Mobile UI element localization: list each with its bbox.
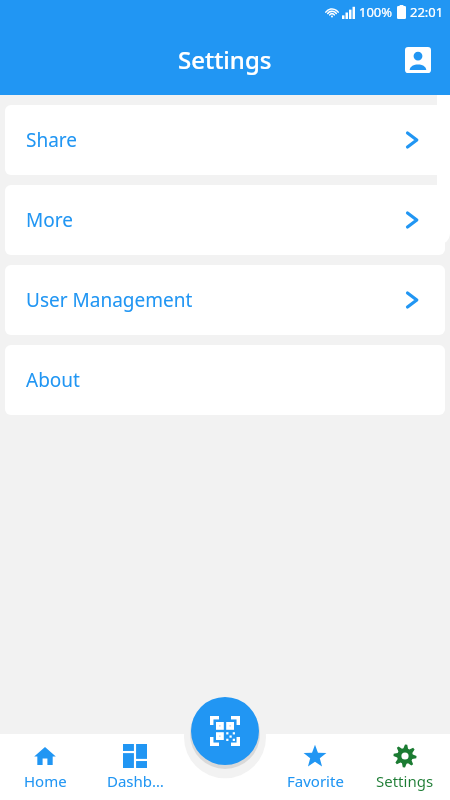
button[interactable]: About [5, 345, 445, 415]
staticText: 22:01 [410, 3, 444, 21]
staticText: Favorite [287, 771, 344, 791]
button[interactable]: Settings [360, 734, 450, 800]
button[interactable]: Scan QR code [189, 695, 261, 767]
staticText: 100% [359, 3, 393, 21]
staticText: More [26, 207, 73, 233]
button[interactable]: Favorite [270, 734, 360, 800]
staticText: Settings [376, 771, 434, 791]
staticText: About [26, 367, 80, 393]
button[interactable]: User Management [5, 265, 445, 335]
button[interactable]: Home [0, 734, 90, 800]
button[interactable]: More [5, 185, 445, 255]
button[interactable]: Share [5, 105, 445, 175]
staticText: Home [24, 771, 67, 791]
staticText: Settings [178, 43, 272, 76]
staticText: Dashb… [107, 771, 164, 791]
button[interactable]: Dashb… [90, 734, 180, 800]
button[interactable]: Account [396, 38, 440, 82]
staticText: Share [26, 127, 78, 153]
staticText: User Management [26, 287, 193, 313]
